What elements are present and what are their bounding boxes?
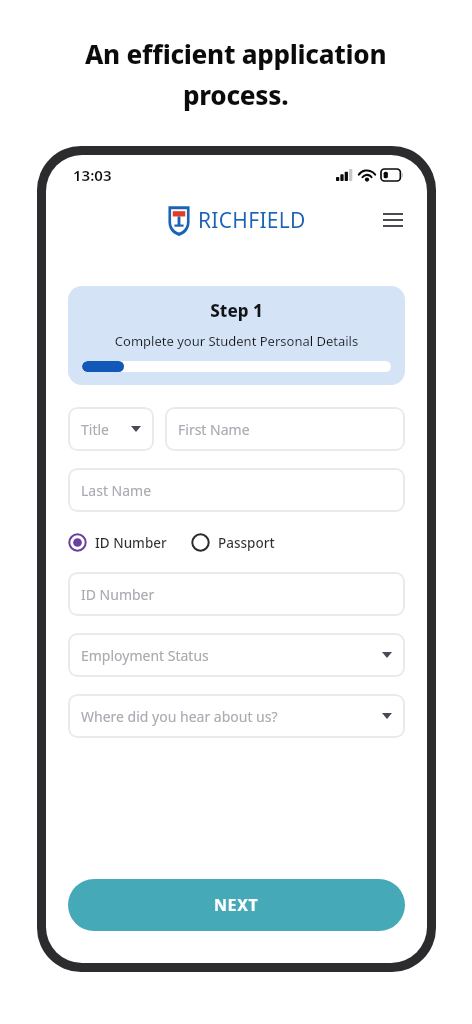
staticText: Last Name [81,481,152,500]
staticText: Complete your Student Personal Details [82,332,391,350]
button[interactable]: Last Name [68,468,405,512]
button[interactable]: Employment Status [68,633,405,677]
button[interactable]: ID Number [68,533,167,552]
staticText: 13:03 [73,165,112,185]
staticText: First Name [178,420,250,439]
staticText: Employment Status [81,646,209,665]
staticText: NEXT [214,894,259,916]
staticText: Passport [218,534,275,552]
staticText: ID Number [81,585,155,604]
staticText: process. [183,77,289,112]
staticText: Where did you hear about us? [81,707,278,726]
staticText: Title [81,420,109,439]
staticText: RICHFIELD [198,206,306,235]
staticText: An efficient application [85,36,387,71]
button[interactable]: Title [68,407,154,451]
button[interactable]: First Name [165,407,405,451]
staticText: Step 1 [82,299,391,322]
button[interactable]: Step 1 [68,286,405,385]
button[interactable]: Passport [191,533,275,552]
button[interactable]: Menu [373,200,413,240]
button[interactable]: NEXT [68,879,405,931]
button[interactable]: Where did you hear about us? [68,694,405,738]
button[interactable]: ID Number [68,572,405,616]
staticText: ID Number [95,534,167,552]
